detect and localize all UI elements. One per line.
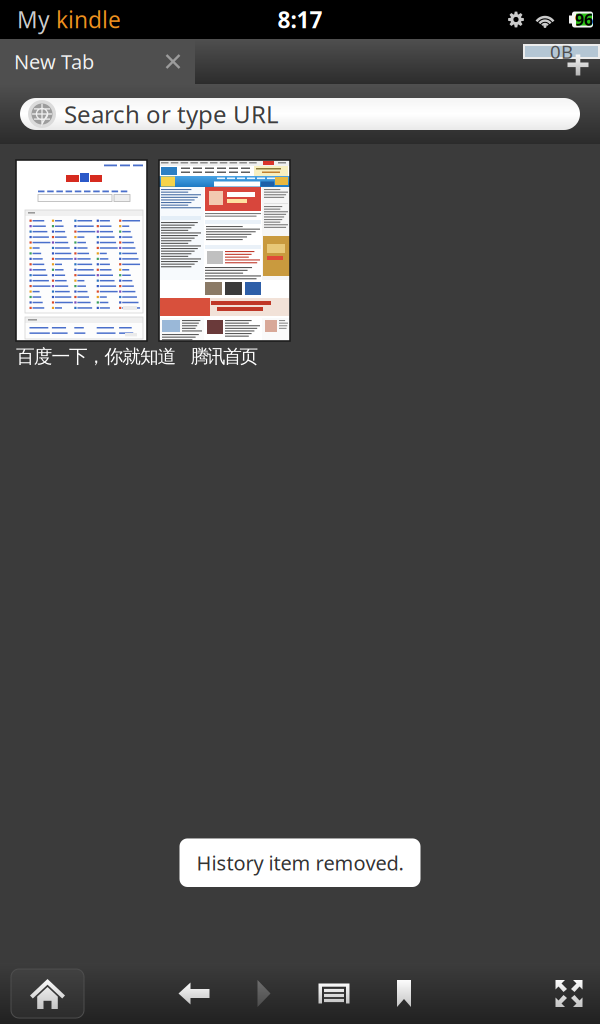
staticText: 8:17 bbox=[277, 4, 322, 34]
staticText: New Tab bbox=[14, 48, 94, 75]
button[interactable]: Back bbox=[159, 964, 229, 1022]
button[interactable]: 百度一下，你就知道 bbox=[16, 160, 147, 368]
button[interactable]: Wi-Fi bbox=[530, 12, 560, 27]
button[interactable]: Battery 96 percent bbox=[560, 11, 593, 27]
button[interactable]: Forward bbox=[229, 964, 299, 1022]
staticText: 百度一下，你就知道 bbox=[16, 345, 177, 368]
button[interactable]: Full screen bbox=[538, 964, 600, 1022]
button[interactable]: New tab bbox=[560, 47, 596, 83]
button[interactable]: Home bbox=[11, 969, 84, 1018]
button[interactable]: My bbox=[0, 0, 121, 42]
staticText: 0B bbox=[550, 39, 573, 64]
staticText: My bbox=[17, 4, 56, 34]
staticText: Search or type URL bbox=[64, 98, 279, 130]
staticText: 96 bbox=[575, 9, 593, 30]
button[interactable]: Bookmarks bbox=[369, 964, 439, 1022]
button[interactable]: Menu bbox=[299, 964, 369, 1022]
button[interactable]: Search or type URL bbox=[20, 98, 580, 130]
button[interactable]: New Tab bbox=[0, 39, 195, 84]
button[interactable]: 腾讯首页 bbox=[159, 160, 290, 368]
staticText: History item removed. bbox=[196, 849, 403, 876]
staticText: kindle bbox=[56, 4, 121, 34]
staticText: 腾讯首页 bbox=[190, 345, 259, 368]
button[interactable]: Settings bbox=[502, 11, 530, 27]
